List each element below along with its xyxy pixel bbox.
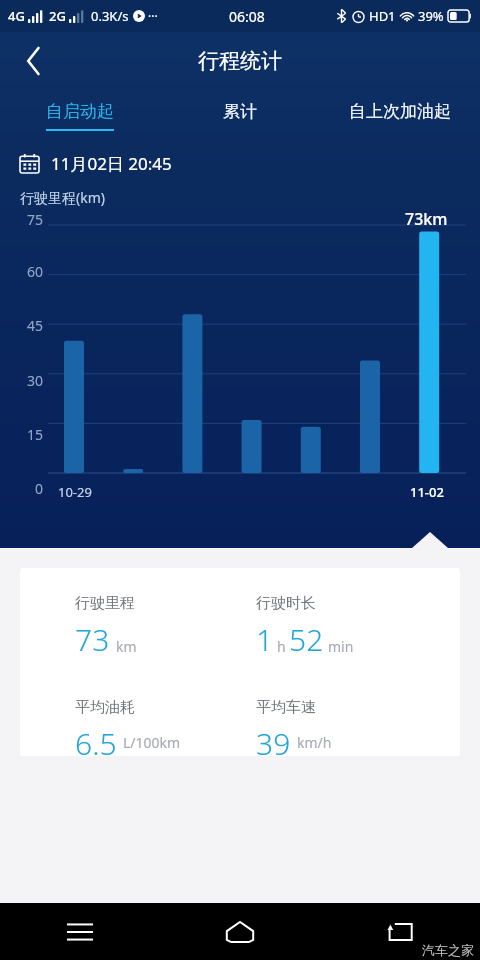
staticText: 汽车之家 [422, 942, 474, 958]
button[interactable]: Home [160, 903, 320, 960]
staticText: 73 [75, 619, 110, 660]
staticText: 平均油耗 [75, 698, 135, 717]
button[interactable]: 行驶里程 [20, 568, 460, 756]
staticText: km/h [297, 733, 332, 752]
staticText: 累计 [223, 101, 257, 122]
staticText: 自启动起 [46, 101, 114, 122]
staticText: 52 [289, 619, 324, 660]
staticText: 10-29 [58, 483, 92, 501]
staticText: 2G [49, 7, 66, 25]
staticText: 39% [418, 7, 444, 25]
staticText: 75 [27, 210, 44, 229]
staticText: 60 [27, 262, 44, 281]
button[interactable]: Menu [0, 903, 160, 960]
button[interactable]: 自启动起 [0, 90, 160, 142]
staticText: 平均车速 [256, 698, 316, 717]
button[interactable]: 自上次加油起 [320, 90, 480, 142]
staticText: 4G [8, 7, 25, 25]
staticText: 6.5 [75, 723, 117, 756]
staticText: 行驶里程(km) [20, 188, 105, 207]
staticText: 0.3K/s [91, 7, 129, 25]
staticText: ··· [148, 8, 158, 24]
staticText: 11月02日 20:45 [51, 152, 172, 175]
button[interactable]: Back [10, 37, 58, 85]
staticText: 15 [27, 425, 44, 444]
staticText: 73km [405, 208, 448, 230]
staticText: 11-02 [410, 483, 444, 501]
button[interactable]: Back [320, 903, 480, 960]
staticText: 30 [27, 371, 44, 390]
staticText: km [116, 637, 137, 656]
staticText: 45 [27, 316, 44, 335]
staticText: 行程统计 [198, 48, 282, 74]
staticText: h [277, 637, 286, 656]
staticText: L/100km [123, 733, 181, 752]
staticText: 1 [256, 619, 274, 660]
button[interactable]: 累计 [160, 90, 320, 142]
staticText: HD1 [369, 7, 396, 25]
staticText: min [328, 637, 354, 656]
staticText: 06:08 [229, 7, 265, 26]
staticText: 39 [256, 723, 291, 756]
staticText: 0 [35, 479, 44, 498]
staticText: 自上次加油起 [349, 101, 451, 122]
staticText: 行驶里程 [75, 594, 135, 613]
staticText: 行驶时长 [256, 594, 316, 613]
